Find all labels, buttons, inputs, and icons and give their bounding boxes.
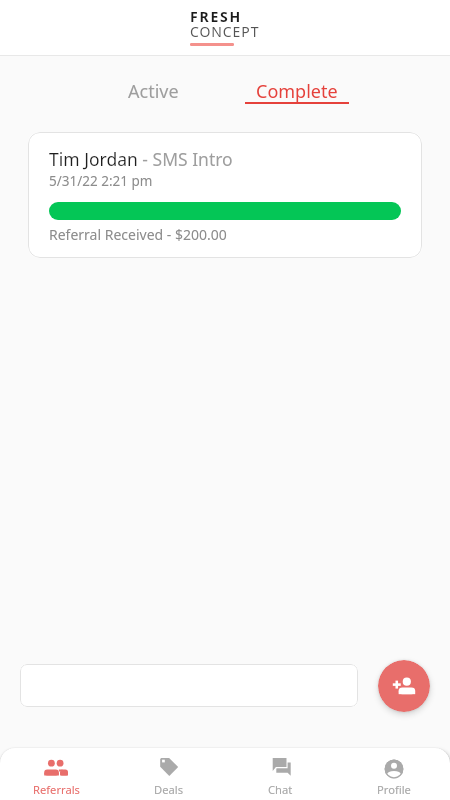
button[interactable]: Complete: [225, 56, 369, 112]
staticText: Active: [128, 79, 179, 104]
button[interactable]: Tim Jordan - SMS Intro: [28, 132, 422, 258]
staticText: Referral Received - $200.00: [49, 225, 227, 244]
staticText: FRESH: [190, 7, 243, 26]
staticText: Tim Jordan - SMS Intro: [49, 147, 233, 171]
staticText: Complete: [256, 79, 338, 104]
button[interactable]: Chat: [224, 748, 337, 800]
button[interactable]: Active: [81, 56, 225, 112]
staticText: Referrals: [33, 782, 80, 797]
staticText: Deals: [154, 782, 183, 797]
button[interactable]: Search referrals: [20, 664, 358, 707]
staticText: 5/31/22 2:21 pm: [49, 172, 153, 190]
button[interactable]: Profile: [337, 748, 450, 800]
staticText: Chat: [268, 782, 293, 797]
button[interactable]: Add referral: [378, 660, 430, 712]
button[interactable]: Referrals: [0, 748, 112, 800]
staticText: Profile: [377, 782, 411, 797]
button[interactable]: Deals: [112, 748, 224, 800]
staticText: CONCEPT: [190, 22, 260, 41]
